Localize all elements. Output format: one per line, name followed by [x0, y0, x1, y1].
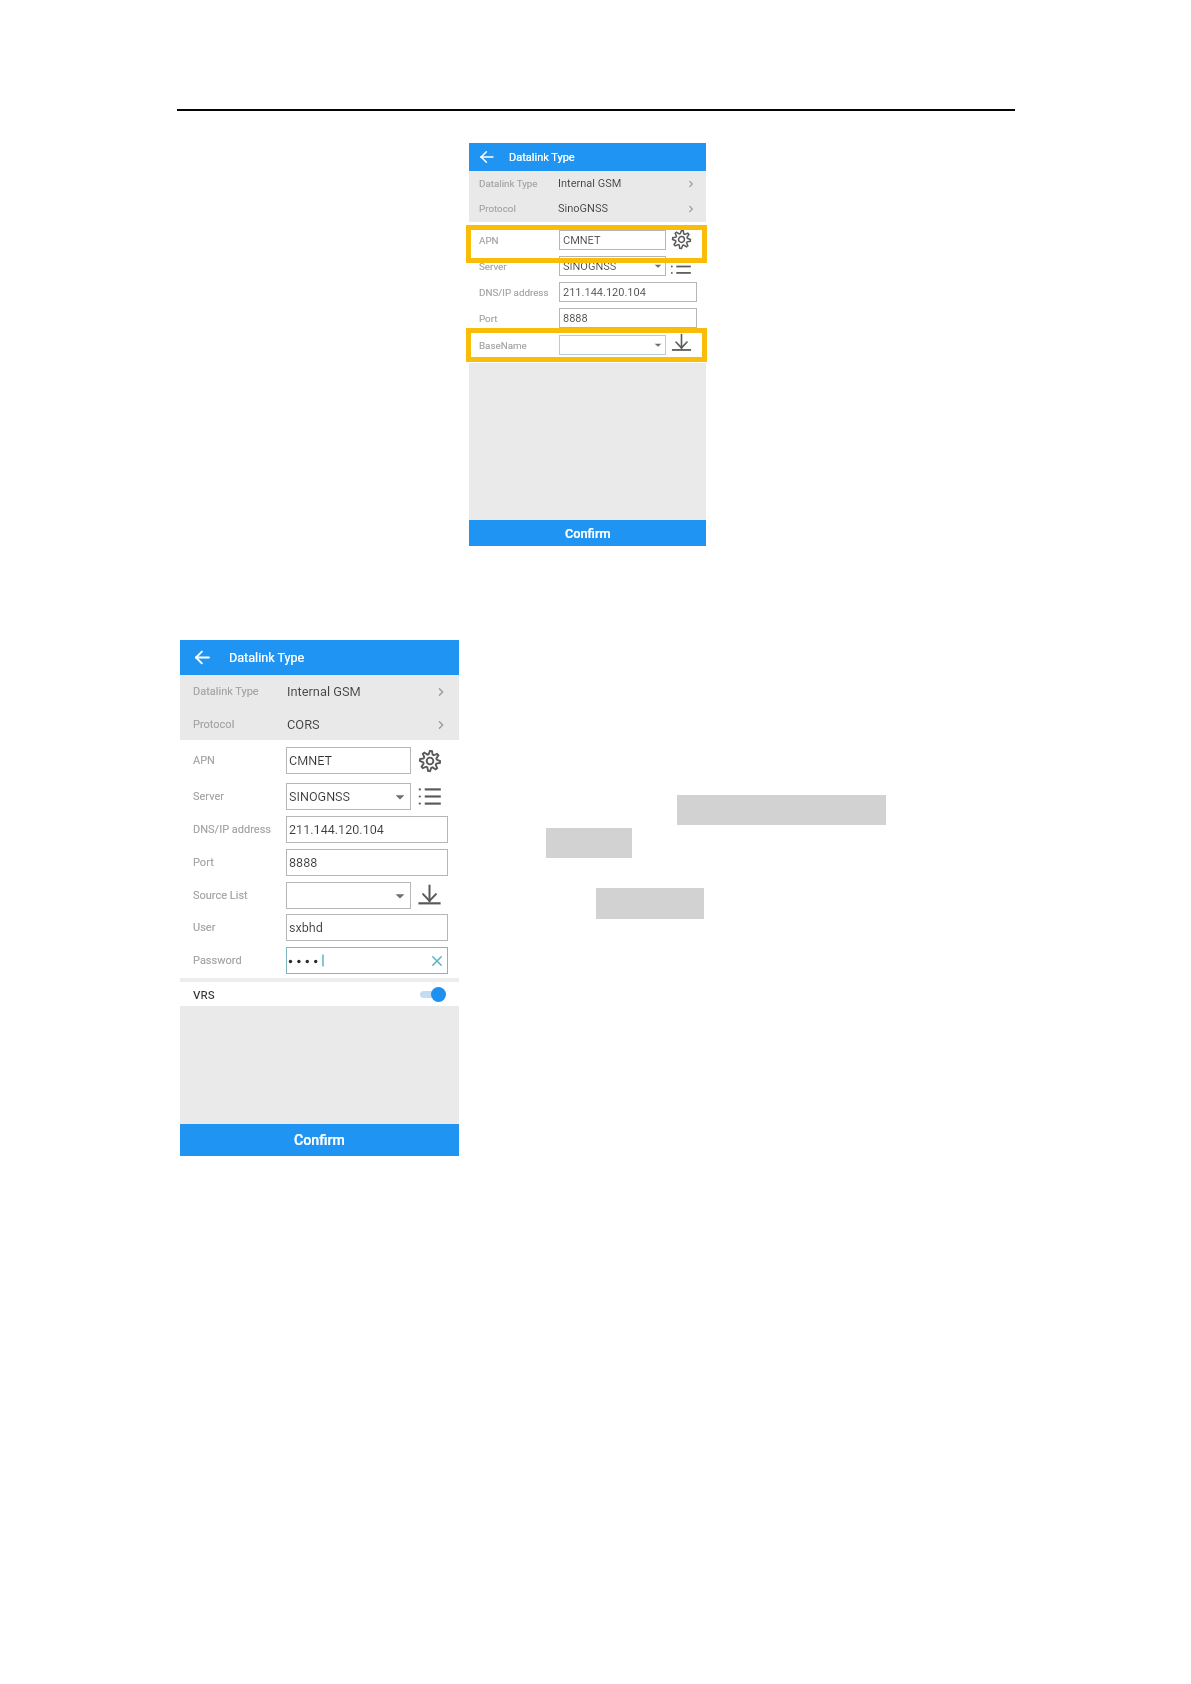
button[interactable]: Clear password	[429, 953, 444, 968]
staticText: Confirm	[294, 1132, 345, 1149]
button[interactable]: CMNET	[559, 230, 666, 250]
staticText: DNS/IP address	[479, 287, 549, 298]
button[interactable]: Download base list	[671, 332, 692, 353]
staticText: DNS/IP address	[193, 823, 271, 836]
button[interactable]: 211.144.120.104	[286, 816, 448, 843]
button[interactable]: Datalink Type	[180, 675, 459, 708]
staticText: Port	[193, 856, 214, 869]
button[interactable]: Server list	[671, 256, 692, 277]
button[interactable]: Server list	[419, 785, 441, 807]
staticText: sxbhd	[289, 920, 323, 935]
staticText: Password	[193, 954, 242, 967]
staticText: Port	[479, 313, 498, 324]
staticText: 211.144.120.104	[289, 822, 384, 837]
staticText: Datalink Type	[229, 650, 305, 665]
staticText: User	[193, 921, 216, 934]
button[interactable]: Protocol	[180, 708, 459, 741]
button[interactable]: Confirm	[180, 1124, 459, 1156]
staticText: Internal GSM	[558, 177, 622, 190]
button[interactable]: Download source list	[418, 883, 441, 906]
staticText: Server	[479, 261, 507, 272]
button[interactable]: VRS	[180, 982, 459, 1006]
button[interactable]: APN settings	[671, 229, 692, 250]
staticText: VRS	[193, 988, 215, 1001]
staticText: CMNET	[563, 234, 601, 247]
button[interactable]: Protocol	[469, 196, 706, 221]
staticText: APN	[193, 754, 215, 767]
staticText: Confirm	[565, 526, 611, 541]
button[interactable]: 8888	[286, 849, 448, 876]
staticText: SinoGNSS	[558, 202, 608, 215]
staticText: Protocol	[193, 718, 235, 731]
staticText: Datalink Type	[479, 178, 538, 189]
staticText: CMNET	[289, 753, 332, 768]
button[interactable]: 211.144.120.104	[559, 282, 697, 302]
button[interactable]	[286, 882, 411, 909]
button[interactable]: CMNET	[286, 747, 411, 774]
button[interactable]	[286, 947, 448, 974]
staticText: BaseName	[479, 340, 527, 351]
staticText: 8888	[563, 312, 588, 325]
staticText: Source List	[193, 889, 248, 902]
staticText: SINOGNSS	[289, 789, 351, 804]
button[interactable]: sxbhd	[286, 914, 448, 941]
staticText: Datalink Type	[509, 151, 575, 164]
button[interactable]: Datalink Type	[469, 171, 706, 196]
button[interactable]: Back	[476, 143, 498, 171]
button[interactable]: Confirm	[469, 520, 706, 546]
button[interactable]: 8888	[559, 308, 697, 328]
button[interactable]	[559, 335, 666, 355]
staticText: 8888	[289, 855, 318, 870]
button[interactable]: Toggle VRS	[420, 987, 446, 1002]
staticText: Internal GSM	[287, 684, 361, 699]
staticText: CORS	[287, 717, 320, 732]
staticText: Datalink Type	[193, 685, 259, 698]
staticText: Protocol	[479, 203, 516, 214]
button[interactable]: Back	[190, 640, 215, 675]
staticText: Server	[193, 790, 225, 803]
button[interactable]: APN settings	[419, 750, 441, 772]
staticText: SINOGNSS	[563, 260, 617, 273]
staticText: APN	[479, 235, 499, 246]
button[interactable]: SINOGNSS	[559, 256, 666, 276]
button[interactable]: SINOGNSS	[286, 783, 411, 810]
staticText: 211.144.120.104	[563, 286, 646, 299]
